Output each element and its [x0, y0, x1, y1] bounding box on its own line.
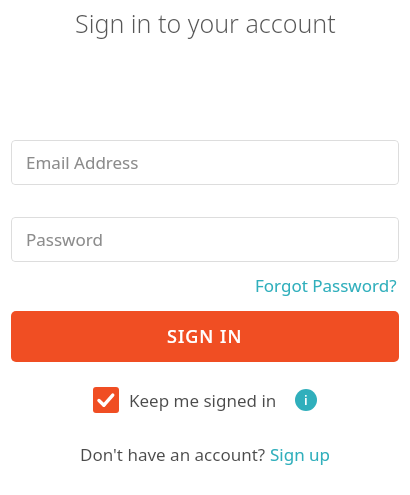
- staticText: Email Address: [26, 151, 139, 174]
- staticText: Password: [26, 228, 103, 251]
- staticText: Sign up: [270, 443, 331, 466]
- staticText: i: [304, 391, 308, 409]
- button[interactable]: Email Address: [11, 140, 399, 185]
- button[interactable]: Forgot Password?: [253, 272, 399, 299]
- button[interactable]: SIGN IN: [11, 311, 399, 362]
- staticText: Don't have an account?: [80, 443, 270, 466]
- staticText: SIGN IN: [167, 324, 243, 349]
- button[interactable]: Sign up: [270, 443, 331, 466]
- button[interactable]: Keep me signed in: [93, 387, 277, 413]
- staticText: Forgot Password?: [255, 274, 397, 297]
- button[interactable]: Password: [11, 217, 399, 262]
- staticText: Keep me signed in: [129, 389, 277, 412]
- button[interactable]: Information about keep me signed in: [295, 389, 317, 411]
- staticText: Sign in to your account: [75, 6, 336, 40]
